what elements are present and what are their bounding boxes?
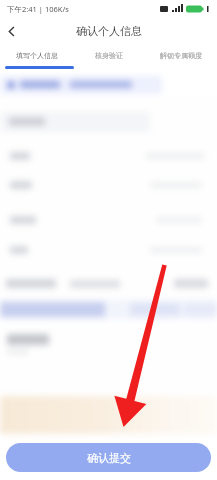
button[interactable]: 填写个人信息 [0,51,73,60]
staticText: 确认提交 [87,451,131,465]
button[interactable]: 解锁专属额度 [145,51,217,60]
button[interactable]: 确认提交 [6,443,211,472]
button[interactable]: 核身验证 [73,51,145,60]
staticText: 下午2:41 | 106K/s [7,4,69,14]
button[interactable]: Back [0,18,22,44]
staticText: 确认个人信息 [76,24,142,38]
staticText: 填写个人信息 [16,51,58,60]
staticText: 核身验证 [95,51,123,60]
staticText: 解锁专属额度 [160,51,202,60]
